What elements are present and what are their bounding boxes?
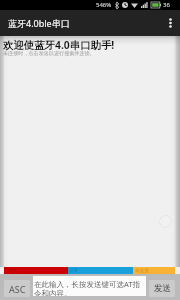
staticText: ASC bbox=[9, 283, 26, 295]
button[interactable]: ASC bbox=[4, 280, 30, 297]
staticText: 蓝牙4.0ble串口 bbox=[8, 17, 70, 29]
staticText: 未连接 bbox=[135, 268, 149, 274]
staticText: 清空 bbox=[7, 268, 17, 274]
staticText: 546% bbox=[96, 1, 112, 9]
button[interactable]: Scroll to bottom bbox=[159, 215, 172, 228]
button[interactable]: 发送 bbox=[149, 280, 175, 297]
staticText: 设置 bbox=[69, 268, 79, 274]
button[interactable]: More options bbox=[160, 10, 180, 36]
staticText: 欢迎使蓝牙4.0串口助手! bbox=[3, 38, 115, 52]
staticText: 36 bbox=[163, 1, 170, 9]
button[interactable]: 设置 bbox=[68, 267, 133, 274]
button[interactable]: 在此输入，长按发送键可选AT指令和内容。 bbox=[33, 276, 146, 296]
staticText: 未连接时，点击发送以进行搜索并连接。 bbox=[3, 50, 95, 56]
staticText: 在此输入，长按发送键可选AT指令和内容。 bbox=[34, 279, 146, 296]
button[interactable]: 未连接 bbox=[133, 267, 175, 274]
staticText: 发送 bbox=[154, 283, 171, 294]
